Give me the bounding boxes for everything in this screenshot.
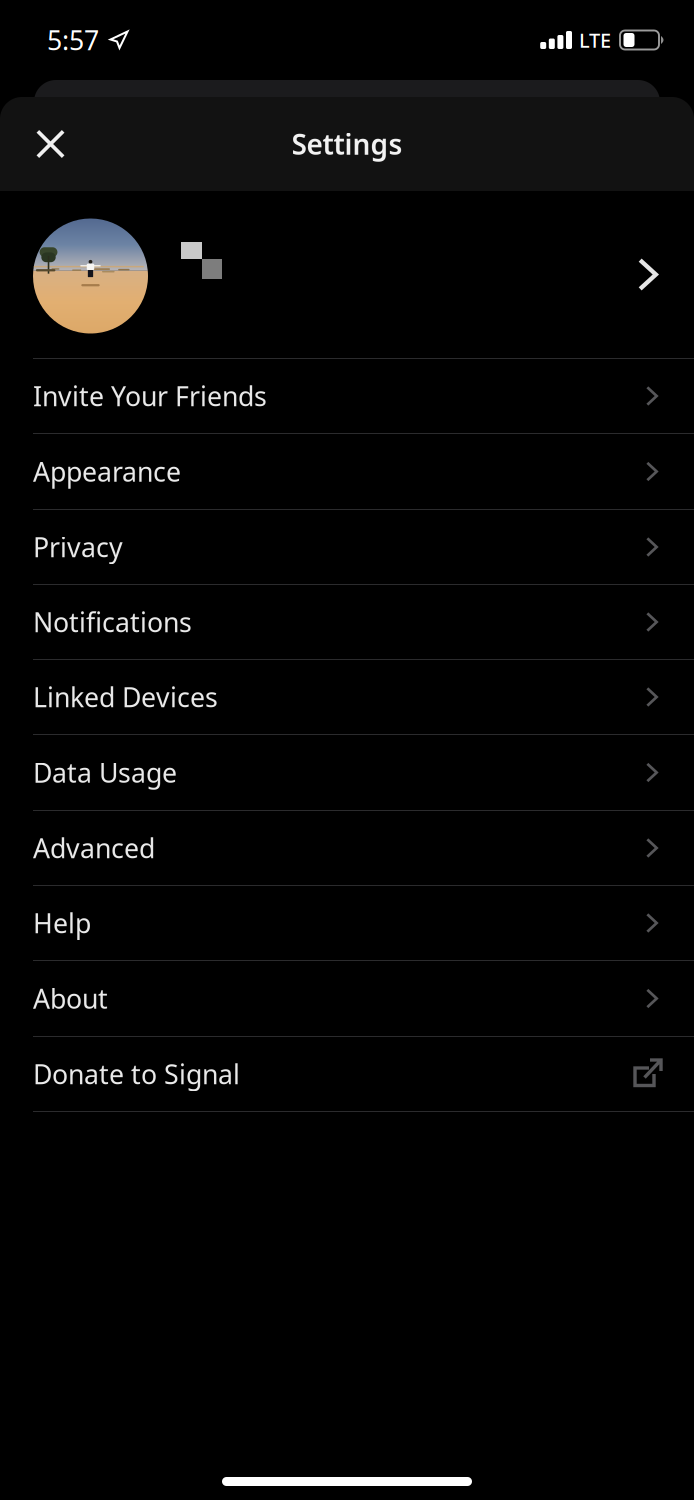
staticText: LTE — [579, 27, 611, 53]
button[interactable]: Invite Your Friends — [0, 359, 694, 434]
button[interactable]: Help — [0, 886, 694, 961]
button[interactable]: About — [0, 961, 694, 1037]
staticText: Settings — [291, 125, 402, 163]
button[interactable]: Privacy — [0, 510, 694, 585]
staticText: Invite Your Friends — [33, 378, 267, 414]
staticText: Appearance — [33, 454, 181, 489]
button[interactable]: Linked Devices — [0, 660, 694, 735]
button[interactable]: Appearance — [0, 434, 694, 510]
button[interactable]: Close — [0, 97, 89, 191]
staticText: Linked Devices — [33, 679, 218, 715]
staticText: Advanced — [33, 830, 155, 866]
button[interactable] — [0, 191, 694, 359]
button[interactable]: Notifications — [0, 585, 694, 660]
staticText: Data Usage — [33, 755, 177, 790]
staticText: Notifications — [33, 604, 192, 640]
staticText: Donate to Signal — [33, 1056, 240, 1092]
staticText: About — [33, 981, 108, 1016]
button[interactable]: Donate to Signal — [0, 1037, 694, 1112]
button[interactable]: Data Usage — [0, 735, 694, 811]
staticText: Privacy — [33, 529, 123, 565]
button[interactable]: Advanced — [0, 811, 694, 886]
staticText: Help — [33, 905, 91, 941]
staticText: 5:57 — [47, 22, 99, 58]
